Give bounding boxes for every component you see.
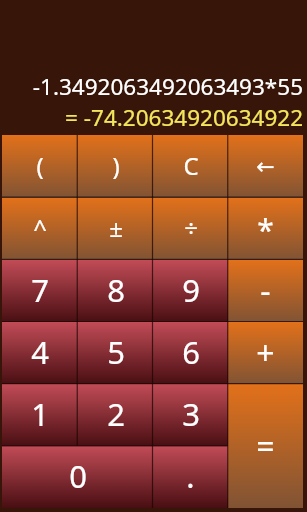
button[interactable]: Plus — [228, 322, 303, 384]
staticText: 8 — [107, 269, 125, 311]
staticText: 3 — [182, 393, 200, 435]
staticText: 7 — [31, 269, 49, 311]
staticText: * — [257, 209, 274, 250]
staticText: 6 — [182, 331, 200, 373]
button[interactable]: 7 — [2, 260, 78, 322]
staticText: 9 — [182, 269, 200, 311]
staticText: . — [186, 455, 195, 497]
button[interactable]: Minus — [228, 260, 303, 322]
button[interactable]: ± — [78, 198, 153, 260]
staticText: 4 — [31, 331, 49, 373]
staticText: ← — [256, 154, 275, 180]
button[interactable]: ( — [2, 135, 78, 198]
staticText: 2 — [107, 393, 125, 435]
staticText: C — [183, 149, 199, 182]
button[interactable]: 6 — [153, 322, 228, 384]
button[interactable]: ) — [78, 135, 153, 198]
button[interactable]: Equals — [228, 384, 303, 508]
button[interactable]: 4 — [2, 322, 78, 384]
staticText: 1 — [31, 393, 49, 435]
staticText: -1.3492063492063493*55 — [32, 71, 303, 102]
button[interactable]: 0 — [2, 446, 153, 508]
staticText: = -74.20634920634922 — [65, 102, 303, 133]
button[interactable]: Multiply — [228, 198, 303, 260]
staticText: ± — [109, 211, 123, 244]
staticText: 0 — [69, 455, 87, 497]
staticText: 5 — [107, 331, 125, 373]
button[interactable]: Backspace — [228, 135, 303, 198]
button[interactable]: 1 — [2, 384, 78, 446]
button[interactable]: ÷ — [153, 198, 228, 260]
staticText: ÷ — [184, 211, 198, 244]
staticText: ( — [36, 149, 44, 182]
button[interactable]: C — [153, 135, 228, 198]
button[interactable]: 5 — [78, 322, 153, 384]
button[interactable]: 9 — [153, 260, 228, 322]
button[interactable]: 8 — [78, 260, 153, 322]
staticText: ^ — [33, 211, 47, 244]
staticText: + — [256, 331, 275, 375]
button[interactable]: . — [153, 446, 228, 508]
button[interactable]: 3 — [153, 384, 228, 446]
staticText: ) — [112, 149, 120, 182]
staticText: = — [256, 424, 275, 468]
button[interactable]: 2 — [78, 384, 153, 446]
staticText: - — [260, 269, 271, 313]
button[interactable]: ^ — [2, 198, 78, 260]
